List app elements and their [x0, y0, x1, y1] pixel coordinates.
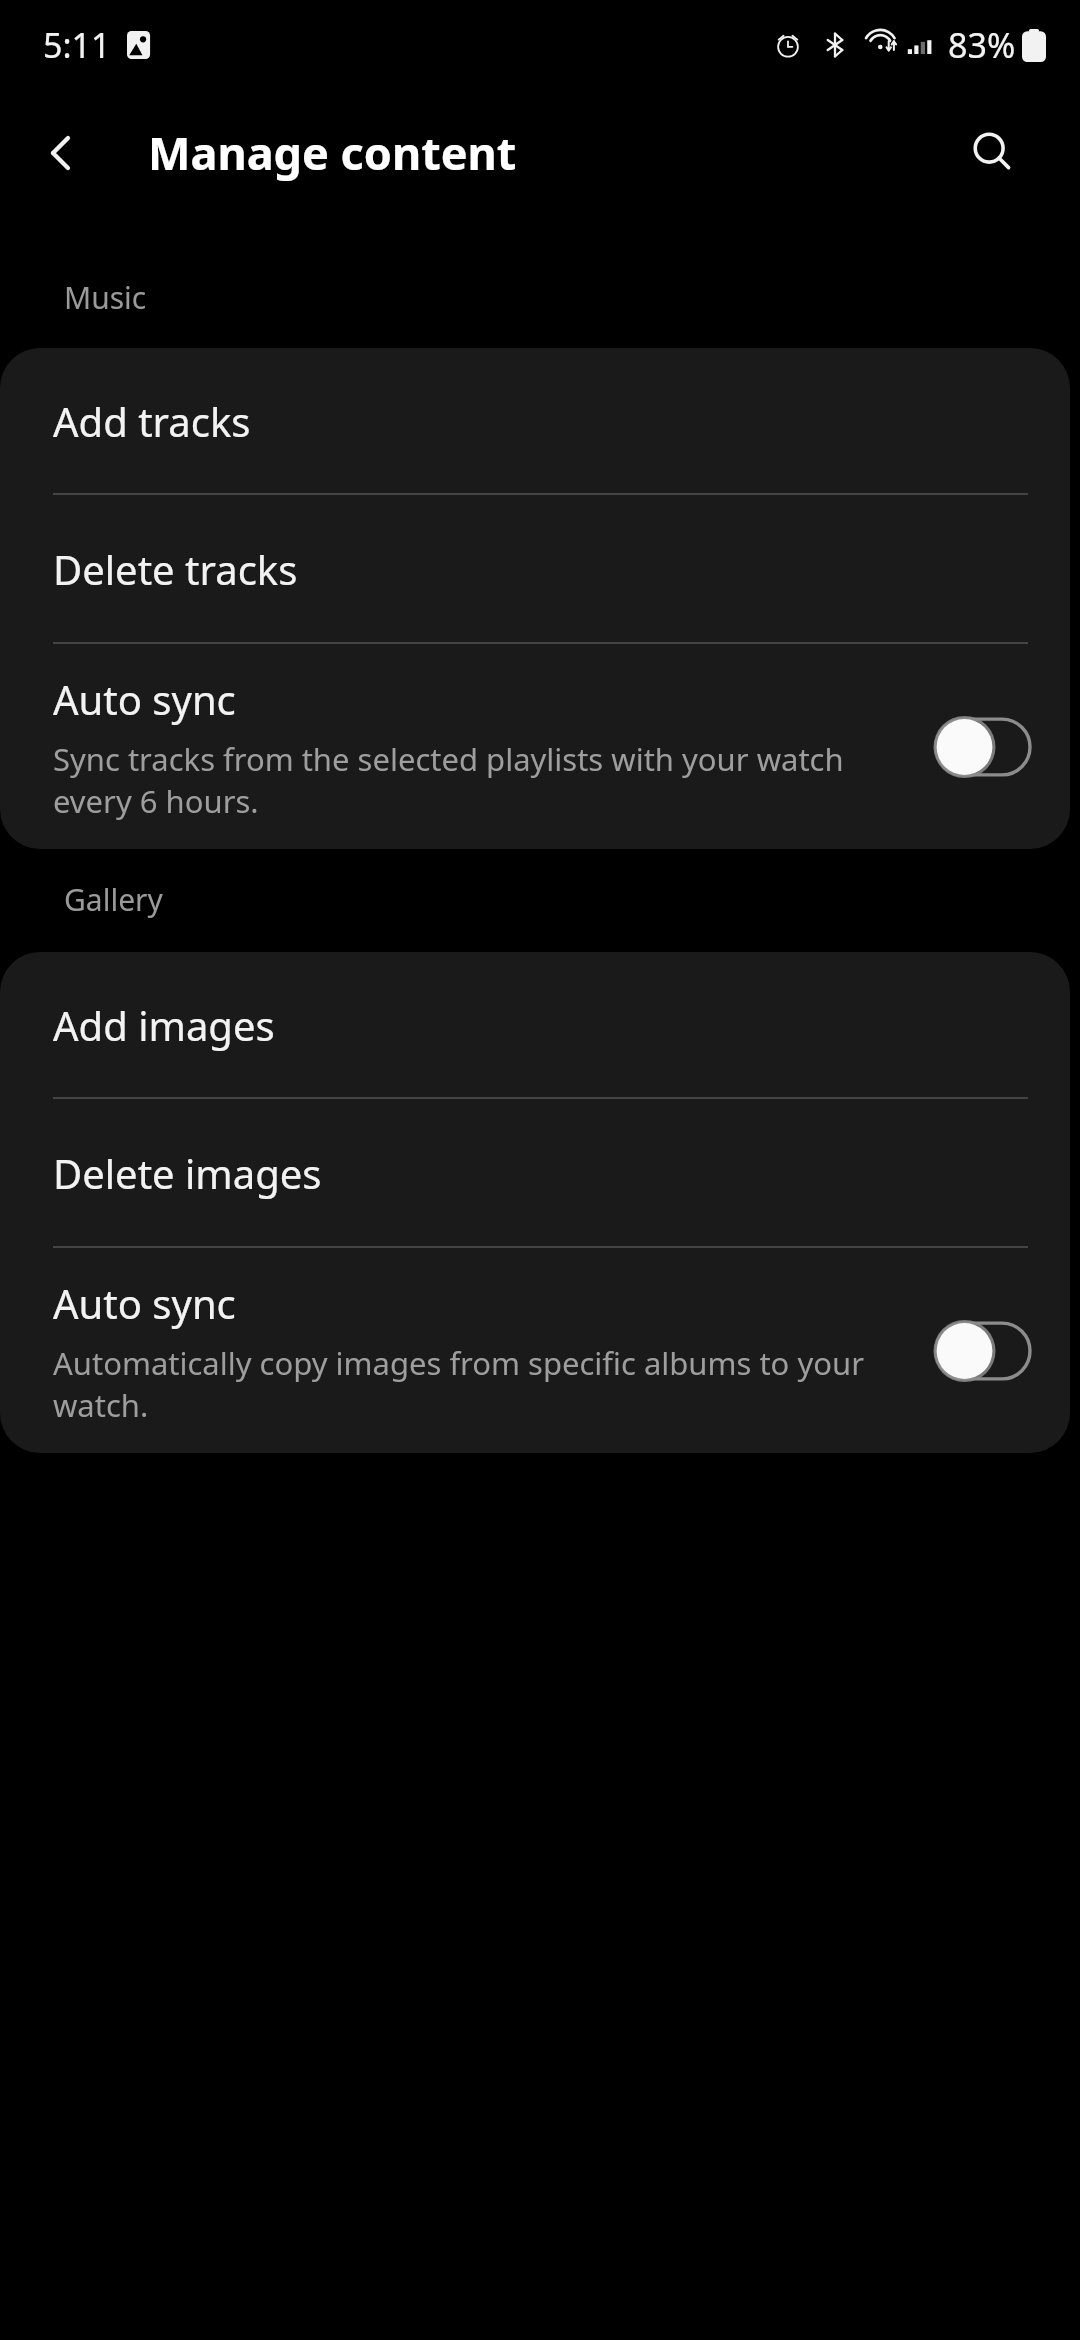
button[interactable]: Auto sync: [0, 1248, 1070, 1453]
staticText: 83%: [948, 22, 1016, 68]
staticText: Gallery: [64, 879, 163, 920]
staticText: Automatically copy images from specific …: [53, 1342, 920, 1426]
button[interactable]: Auto sync: [0, 644, 1070, 849]
staticText: Auto sync: [53, 672, 236, 726]
button[interactable]: Search: [950, 110, 1036, 196]
staticText: Manage content: [148, 122, 517, 183]
staticText: Music: [64, 277, 147, 318]
button[interactable]: Delete images: [0, 1099, 1070, 1246]
button[interactable]: Add tracks: [0, 348, 1070, 493]
staticText: 5:11: [43, 22, 111, 68]
staticText: Sync tracks from the selected playlists …: [53, 738, 920, 822]
button[interactable]: Back: [20, 110, 106, 196]
staticText: Add tracks: [53, 394, 251, 448]
staticText: Delete images: [53, 1146, 322, 1200]
staticText: Add images: [53, 998, 275, 1052]
button[interactable]: Delete tracks: [0, 495, 1070, 642]
staticText: Delete tracks: [53, 542, 298, 596]
button[interactable]: Add images: [0, 952, 1070, 1097]
staticText: Auto sync: [53, 1276, 236, 1330]
